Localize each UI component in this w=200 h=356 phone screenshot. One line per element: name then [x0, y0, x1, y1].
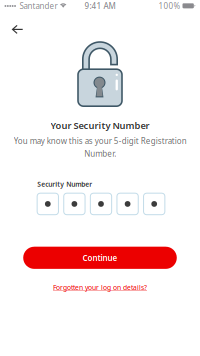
staticText: 9:41 AM	[84, 1, 115, 11]
staticText: Your Security Number	[50, 119, 149, 132]
staticText: Santander	[19, 1, 57, 11]
staticText: Security Number	[37, 180, 92, 189]
button[interactable]: Continue	[23, 247, 177, 269]
staticText: Forgotten your log on details?	[53, 283, 147, 292]
staticText: Continue	[82, 252, 117, 263]
staticText: 100%	[158, 1, 180, 11]
button[interactable]: Forgotten your log on details?	[53, 283, 147, 292]
button[interactable]: Back	[0, 12, 35, 42]
staticText: You may know this as your 5-digit Regist…	[13, 136, 186, 159]
